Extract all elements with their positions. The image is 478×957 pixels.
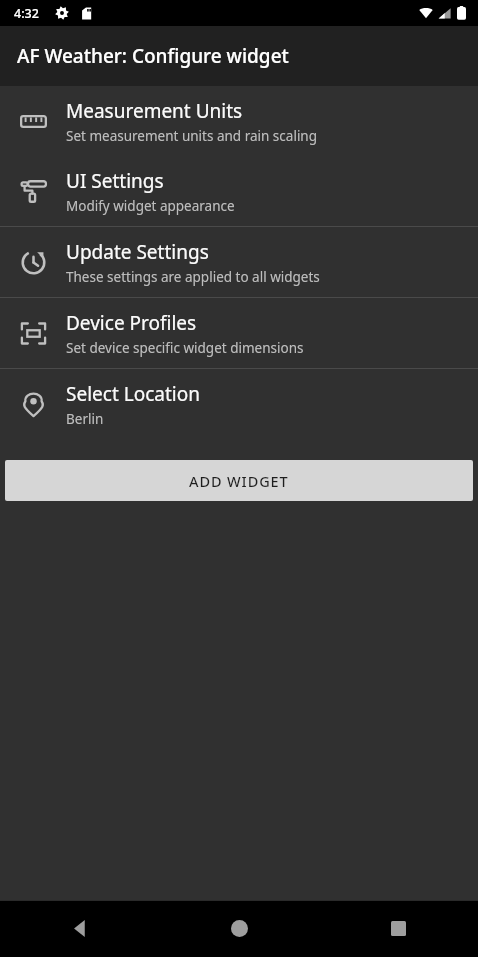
- button[interactable]: Measurement Units: [0, 86, 478, 156]
- staticText: Update Settings: [66, 239, 209, 265]
- staticText: Modify widget appearance: [66, 197, 235, 215]
- button[interactable]: Select Location: [0, 369, 478, 439]
- staticText: Berlin: [66, 410, 104, 428]
- button[interactable]: Back: [0, 900, 160, 957]
- staticText: UI Settings: [66, 168, 164, 194]
- button[interactable]: ADD WIDGET: [5, 460, 473, 501]
- button[interactable]: Update Settings: [0, 227, 478, 297]
- staticText: ADD WIDGET: [189, 471, 289, 491]
- staticText: These settings are applied to all widget…: [66, 268, 320, 286]
- staticText: Set measurement units and rain scaling: [66, 127, 318, 145]
- button[interactable]: Device Profiles: [0, 298, 478, 368]
- staticText: 4:32: [14, 5, 39, 22]
- staticText: Select Location: [66, 381, 200, 407]
- button[interactable]: UI Settings: [0, 156, 478, 226]
- button[interactable]: Home: [160, 900, 319, 957]
- staticText: Measurement Units: [66, 98, 243, 124]
- staticText: Set device specific widget dimensions: [66, 339, 304, 357]
- staticText: AF Weather: Configure widget: [17, 43, 289, 69]
- staticText: Device Profiles: [66, 310, 197, 336]
- button[interactable]: Recent apps: [319, 900, 478, 957]
